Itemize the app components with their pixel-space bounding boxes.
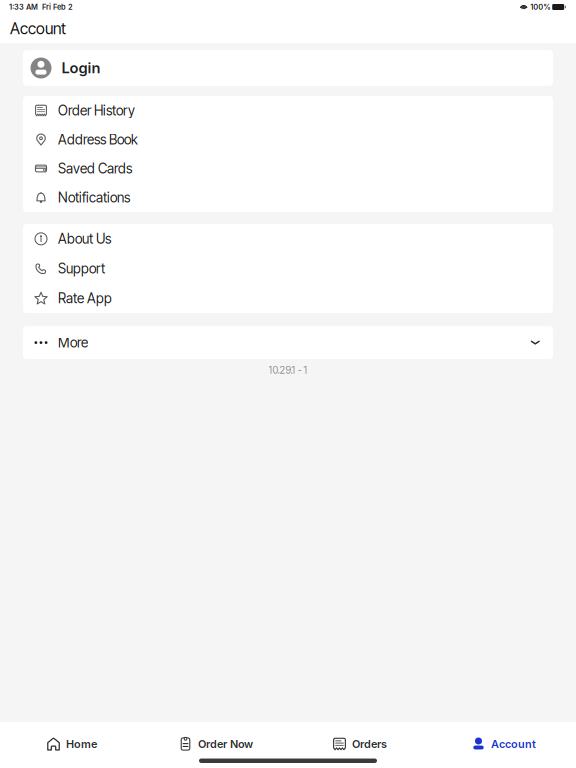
- button[interactable]: Orders: [288, 733, 432, 755]
- staticText: Home: [66, 737, 97, 751]
- button[interactable]: Account: [432, 733, 576, 755]
- staticText: 10.29.1 - 1: [268, 364, 307, 376]
- button[interactable]: More: [23, 326, 553, 359]
- button[interactable]: About Us: [23, 224, 553, 254]
- staticText: Order History: [58, 102, 135, 119]
- button[interactable]: Address Book: [23, 125, 553, 154]
- button[interactable]: Home: [0, 733, 144, 755]
- staticText: Login: [61, 59, 100, 77]
- staticText: Fri Feb 2: [42, 2, 73, 11]
- staticText: Notifications: [58, 189, 130, 206]
- staticText: Account: [491, 737, 536, 751]
- staticText: More: [58, 334, 88, 351]
- staticText: Rate App: [58, 290, 112, 306]
- staticText: 100%: [530, 2, 550, 11]
- staticText: 1:33 AM: [9, 2, 38, 11]
- button[interactable]: Order History: [23, 96, 553, 125]
- staticText: Order Now: [198, 737, 253, 751]
- staticText: About Us: [58, 231, 111, 247]
- button[interactable]: Notifications: [23, 183, 553, 212]
- staticText: Saved Cards: [58, 160, 132, 177]
- staticText: Support: [58, 260, 105, 277]
- button[interactable]: Support: [23, 254, 553, 283]
- button[interactable]: Login: [23, 50, 553, 86]
- staticText: Orders: [352, 737, 387, 751]
- button[interactable]: Rate App: [23, 283, 553, 313]
- button[interactable]: Order Now: [144, 733, 288, 755]
- staticText: Address Book: [58, 131, 138, 148]
- staticText: Account: [10, 19, 66, 38]
- button[interactable]: Saved Cards: [23, 154, 553, 183]
